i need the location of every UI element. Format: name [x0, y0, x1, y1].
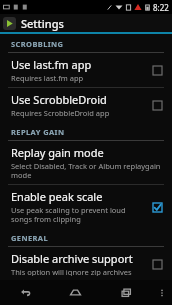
- staticText: Requires last.fm app: [11, 73, 84, 83]
- button[interactable]: Use last.fm app: [0, 53, 172, 87]
- staticText: Replay gain mode: [11, 145, 104, 160]
- button[interactable]: App icon, navigate up: [3, 17, 16, 30]
- button[interactable]: Checked: [150, 200, 164, 214]
- button[interactable]: Unchecked: [150, 63, 164, 77]
- staticText: Use last.fm app: [11, 57, 92, 72]
- button[interactable]: Disable archive support: [0, 247, 172, 280]
- staticText: REPLAY GAIN: [11, 127, 65, 137]
- staticText: Select Disabled, Track or Album replayga…: [11, 161, 164, 180]
- button[interactable]: Use ScrobbleDroid: [0, 88, 172, 122]
- staticText: SCROBBLING: [11, 39, 64, 49]
- staticText: Use ScrobbleDroid: [11, 92, 107, 107]
- button[interactable]: Back: [0, 280, 50, 305]
- button[interactable]: Unchecked: [150, 98, 164, 112]
- button[interactable]: Replay gain mode: [0, 141, 172, 184]
- button[interactable]: Unchecked: [150, 257, 164, 271]
- staticText: Use peak scaling to prevent loud songs f…: [11, 205, 144, 224]
- staticText: Enable peak scale: [11, 189, 103, 204]
- button[interactable]: Enable peak scale: [0, 185, 172, 228]
- staticText: GENERAL: [11, 233, 49, 243]
- button[interactable]: More options: [152, 280, 172, 305]
- staticText: Requires ScrobbleDroid app: [11, 108, 110, 118]
- staticText: Settings: [21, 16, 64, 31]
- staticText: Disable archive support: [11, 251, 133, 266]
- staticText: 8:22: [153, 2, 169, 13]
- button[interactable]: Home: [50, 280, 101, 305]
- button[interactable]: Recent apps: [101, 280, 152, 305]
- staticText: This option will ignore zip archives whe…: [11, 267, 144, 276]
